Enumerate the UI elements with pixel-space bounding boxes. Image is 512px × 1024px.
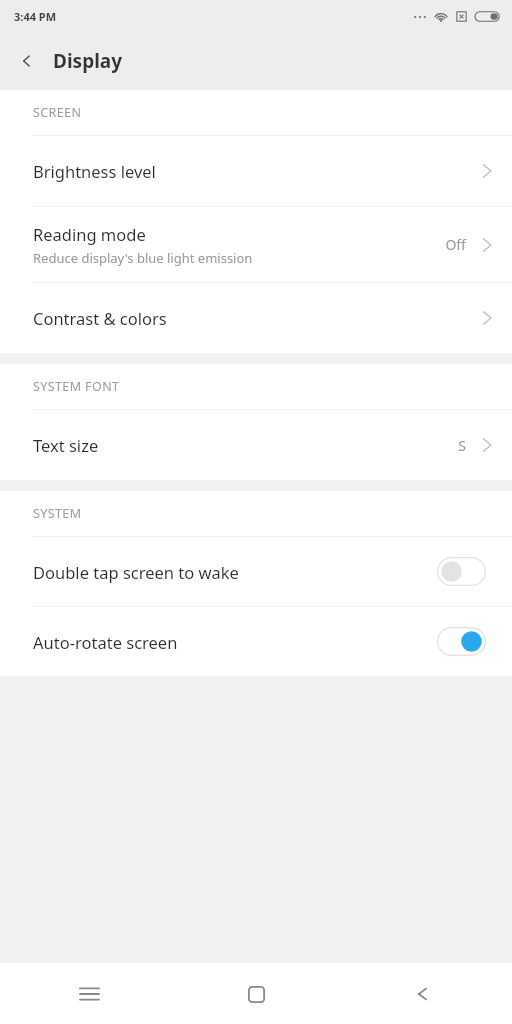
staticText: 3:44 PM (14, 9, 57, 24)
staticText: Reduce display's blue light emission (33, 249, 253, 267)
staticText: Reading mode (33, 223, 146, 245)
staticText: SYSTEM (33, 505, 82, 522)
staticText: S (458, 436, 466, 455)
staticText: Display (53, 48, 123, 74)
button[interactable]: Text size (0, 410, 512, 480)
button[interactable]: Back (6, 40, 48, 82)
staticText: Off (445, 235, 466, 254)
staticText: Auto-rotate screen (33, 631, 437, 653)
button[interactable]: Reading mode (0, 207, 512, 282)
staticText: Double tap screen to wake (33, 561, 437, 583)
button[interactable]: Home (229, 967, 283, 1021)
staticText: Text size (33, 434, 99, 456)
button[interactable]: Recent apps (62, 967, 116, 1021)
staticText: Brightness level (33, 160, 156, 182)
staticText: SCREEN (33, 104, 82, 121)
button[interactable]: Brightness level (0, 136, 512, 206)
button[interactable]: Back (396, 967, 450, 1021)
button[interactable]: Auto-rotate screen (0, 607, 512, 676)
button[interactable]: Contrast & colors (0, 283, 512, 353)
staticText: Contrast & colors (33, 307, 167, 329)
staticText: SYSTEM FONT (33, 378, 120, 395)
button[interactable]: Double tap screen to wake (0, 537, 512, 606)
